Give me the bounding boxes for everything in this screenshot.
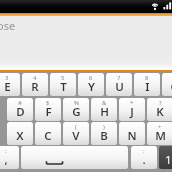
staticText: ,: [4, 152, 8, 168]
staticText: V: [72, 128, 80, 144]
button[interactable]: X: [7, 122, 33, 145]
staticText: (: [75, 123, 77, 131]
staticText: +: [158, 123, 162, 131]
staticText: :: [143, 147, 145, 155]
staticText: 6: [89, 74, 93, 82]
staticText: 123: [165, 152, 172, 168]
staticText: 8: [145, 74, 149, 82]
staticText: R: [31, 79, 39, 95]
staticText: F: [45, 104, 52, 120]
staticText: J: [130, 104, 134, 120]
button[interactable]: Symbols: [159, 146, 172, 169]
staticText: &: [102, 99, 107, 107]
button[interactable]: 7: [106, 73, 132, 96]
button[interactable]: %: [63, 98, 89, 121]
staticText: 3: [5, 74, 9, 82]
staticText: ?: [159, 99, 162, 107]
staticText: #: [18, 99, 22, 107]
button[interactable]: ): [91, 122, 117, 145]
staticText: ): [103, 123, 105, 131]
button[interactable]: *: [119, 98, 145, 121]
staticText: H: [100, 104, 109, 120]
staticText: 4: [33, 74, 37, 82]
button[interactable]: :: [131, 146, 157, 169]
button[interactable]: Space: [21, 146, 128, 169]
button[interactable]: N: [119, 122, 145, 145]
button[interactable]: +: [147, 122, 172, 145]
staticText: X: [16, 128, 24, 144]
button[interactable]: 4: [22, 73, 48, 96]
button[interactable]: 9: [162, 73, 172, 96]
button[interactable]: ose: [0, 18, 16, 33]
staticText: E: [4, 79, 11, 95]
other: Space: [21, 146, 128, 169]
button[interactable]: C: [35, 122, 61, 145]
staticText: T: [60, 79, 67, 95]
button[interactable]: 3: [0, 73, 20, 96]
button[interactable]: (: [63, 122, 89, 145]
staticText: G: [72, 104, 81, 120]
staticText: 5: [61, 74, 65, 82]
staticText: *: [130, 99, 134, 107]
staticText: C: [44, 128, 52, 144]
staticText: M: [155, 128, 166, 144]
staticText: O: [170, 79, 172, 95]
staticText: $: [46, 99, 50, 107]
button[interactable]: 6: [78, 73, 104, 96]
staticText: Y: [88, 79, 95, 95]
button[interactable]: ?: [147, 98, 172, 121]
staticText: N: [127, 128, 137, 144]
other: Symbols: [159, 146, 172, 169]
staticText: I: [145, 79, 150, 95]
staticText: K: [156, 104, 164, 120]
staticText: D: [16, 104, 25, 120]
button[interactable]: $: [35, 98, 61, 121]
staticText: B: [100, 128, 108, 144]
button[interactable]: &: [91, 98, 117, 121]
staticText: U: [115, 79, 124, 95]
staticText: %: [74, 99, 79, 107]
button[interactable]: #: [7, 98, 33, 121]
button[interactable]: 8: [134, 73, 160, 96]
staticText: :: [5, 147, 7, 155]
staticText: 7: [117, 74, 121, 82]
button[interactable]: :: [0, 146, 19, 169]
button[interactable]: 5: [50, 73, 76, 96]
staticText: .: [142, 152, 146, 168]
